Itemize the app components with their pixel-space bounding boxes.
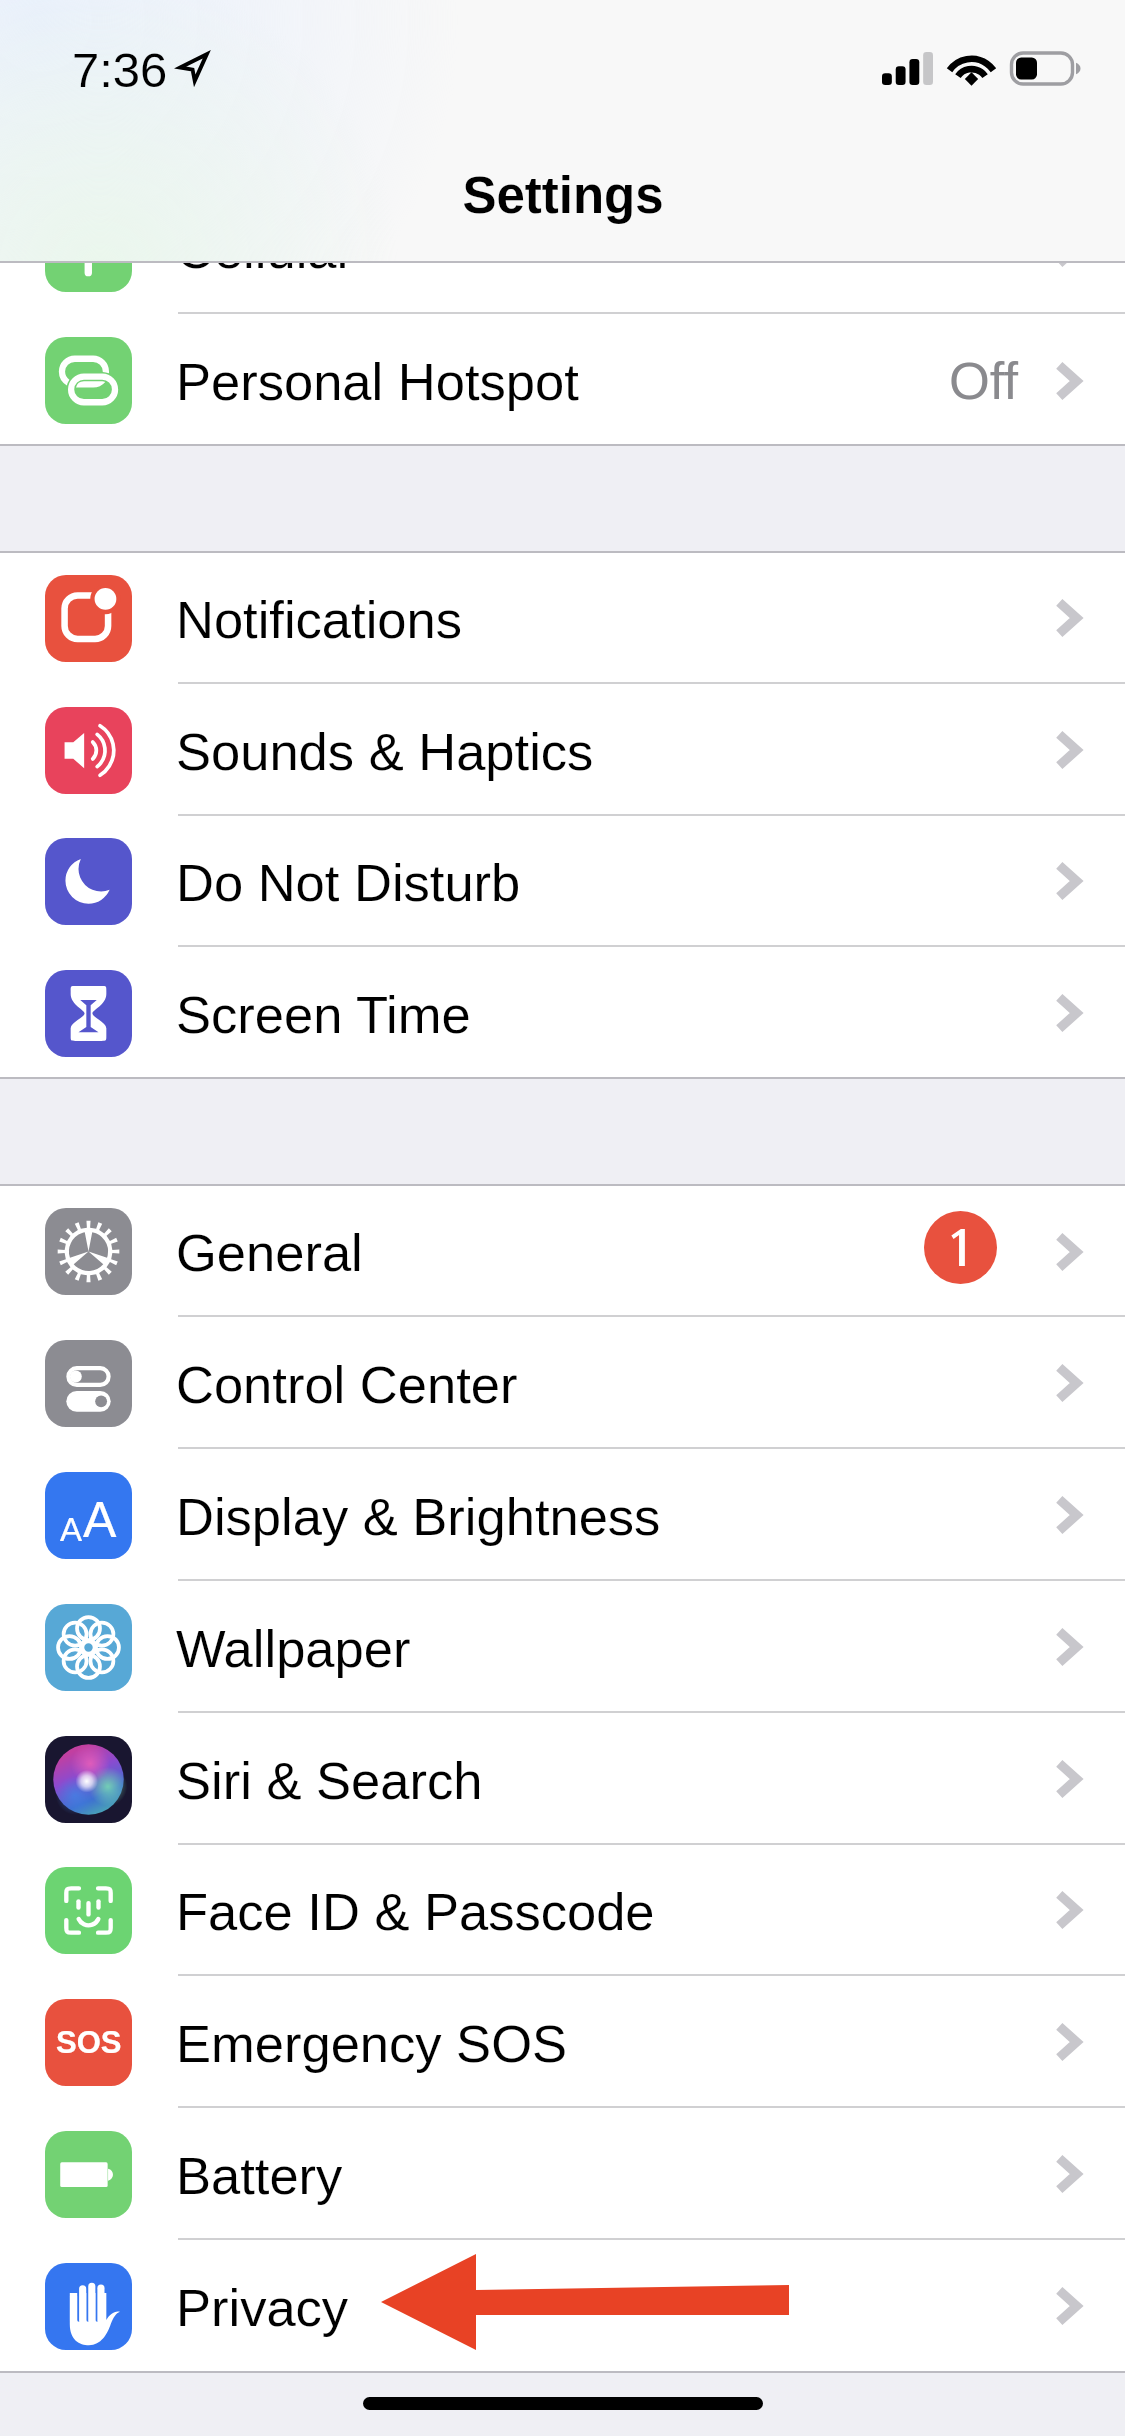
button[interactable]: Do Not Disturb — [0, 815, 1125, 947]
button[interactable]: Cellular — [0, 182, 1125, 314]
staticText: Do Not Disturb — [176, 853, 521, 912]
staticText: 7:36 — [72, 43, 168, 98]
button[interactable]: General — [0, 1185, 1125, 1317]
button[interactable]: SOS — [0, 1976, 1125, 2108]
button[interactable]: Notifications — [0, 552, 1125, 684]
staticText: Siri & Search — [176, 1751, 483, 1810]
staticText: Emergency SOS — [176, 2014, 567, 2073]
button[interactable]: Screen Time — [0, 947, 1125, 1079]
staticText: Display & Brightness — [176, 1487, 661, 1546]
staticText: Control Center — [176, 1355, 518, 1414]
staticText: General — [176, 1223, 363, 1282]
staticText: Screen Time — [176, 985, 471, 1044]
button[interactable]: Battery — [0, 2108, 1125, 2240]
staticText: Battery — [176, 2146, 343, 2205]
staticText: Wallpaper — [176, 1619, 411, 1678]
staticText: A — [83, 1492, 117, 1548]
button[interactable]: Wallpaper — [0, 1581, 1125, 1713]
staticText: Settings — [462, 167, 664, 224]
staticText: Cellular — [176, 220, 354, 279]
button[interactable]: Siri & Search — [0, 1713, 1125, 1845]
staticText: SOS — [56, 2025, 122, 2060]
button[interactable]: Personal Hotspot — [0, 314, 1125, 446]
staticText: A — [60, 1511, 83, 1548]
staticText: Notifications — [176, 590, 462, 649]
button[interactable]: A — [0, 1449, 1125, 1581]
staticText: Off — [949, 351, 1019, 410]
staticText: Personal Hotspot — [176, 352, 579, 411]
staticText: Face ID & Passcode — [176, 1882, 655, 1941]
button[interactable]: Face ID & Passcode — [0, 1844, 1125, 1976]
button[interactable]: Control Center — [0, 1317, 1125, 1449]
button[interactable]: Privacy — [0, 2240, 1125, 2372]
button[interactable]: Sounds & Haptics — [0, 684, 1125, 816]
staticText: Sounds & Haptics — [176, 722, 594, 781]
staticText: Privacy — [176, 2278, 349, 2337]
